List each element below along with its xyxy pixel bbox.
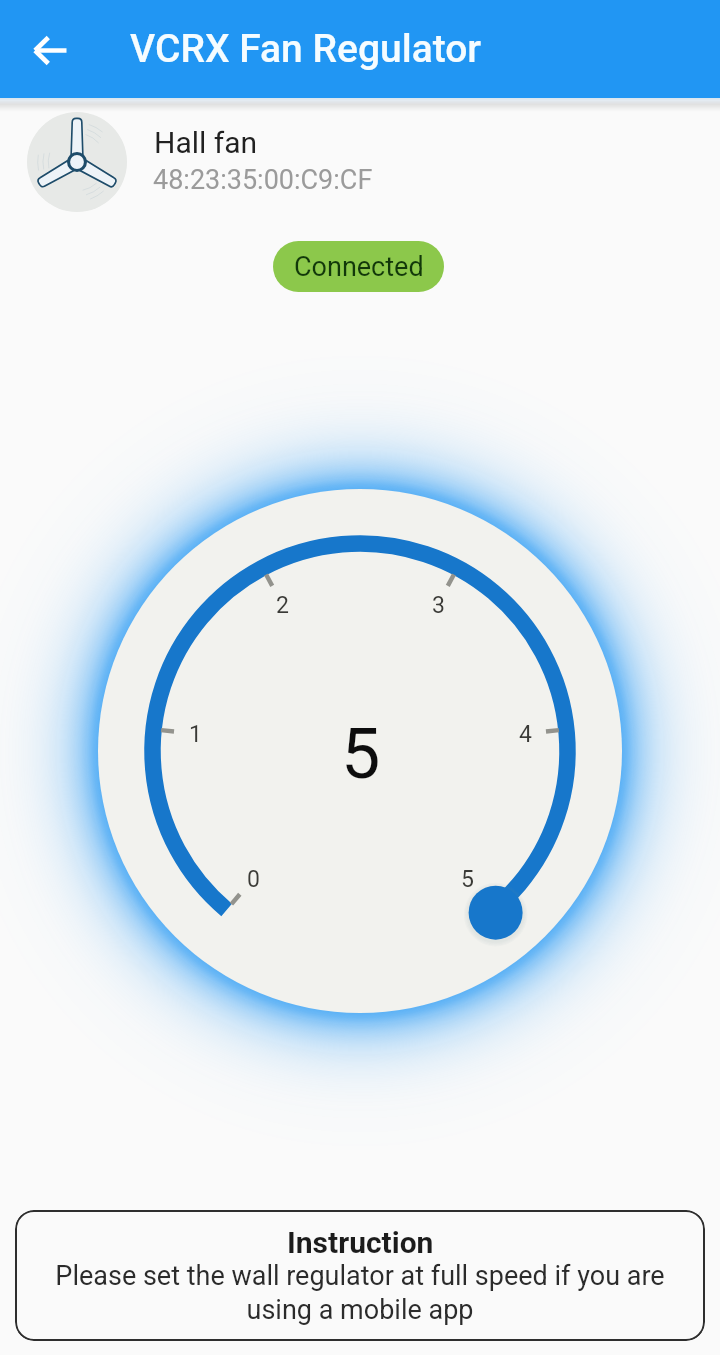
button[interactable]: Back	[22, 21, 78, 77]
staticText: 5	[341, 713, 381, 795]
button[interactable]: Connected	[273, 241, 444, 292]
staticText: Connected	[294, 251, 424, 283]
staticText: 4	[519, 721, 532, 748]
staticText: 48:23:35:00:C9:CF	[153, 164, 373, 196]
staticText: 5	[461, 866, 474, 893]
staticText: VCRX Fan Regulator	[130, 26, 482, 72]
staticText: 1	[189, 721, 202, 748]
staticText: Instruction	[287, 1225, 434, 1260]
button[interactable]: Instruction	[15, 1210, 705, 1341]
staticText: Please set the wall regulator at full sp…	[23, 1260, 697, 1326]
staticText: 0	[247, 866, 260, 893]
staticText: Hall fan	[154, 125, 258, 160]
staticText: 3	[432, 592, 445, 619]
staticText: 2	[276, 592, 289, 619]
